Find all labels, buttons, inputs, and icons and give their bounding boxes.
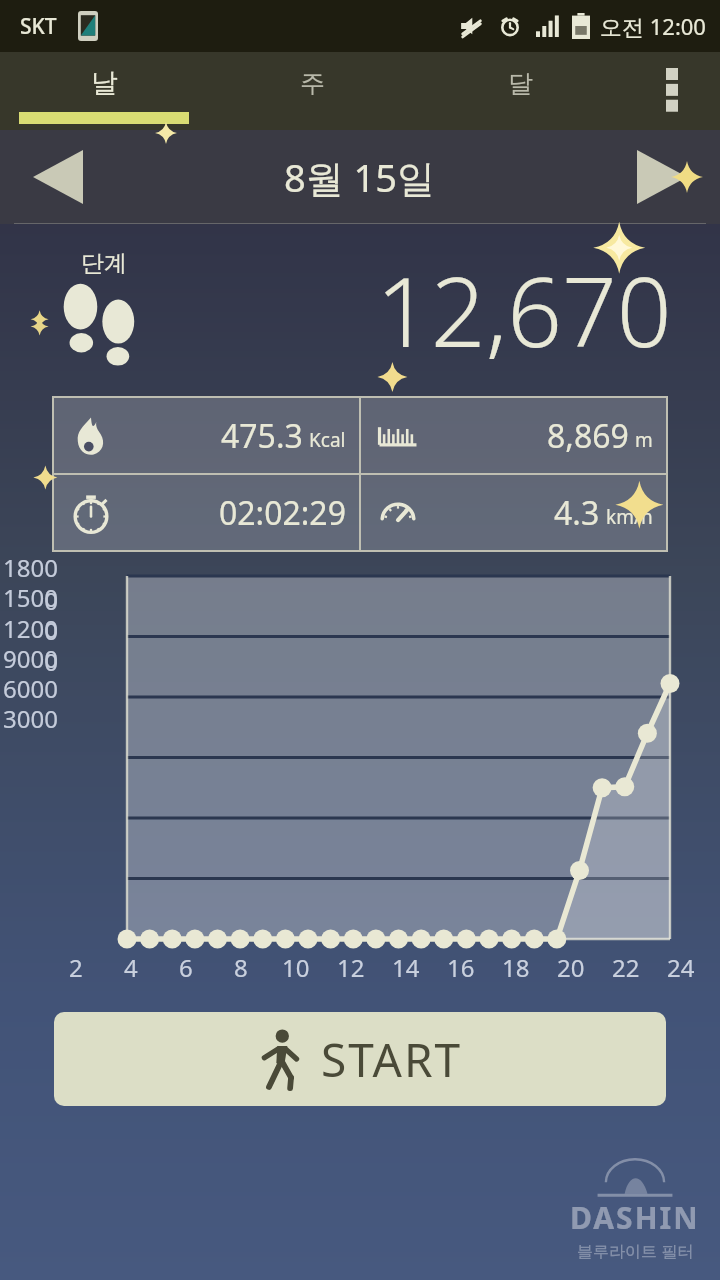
staticText: 18000 (0, 551, 58, 617)
button[interactable]: 8,869 (360, 397, 667, 474)
staticText: SKT (20, 12, 57, 41)
staticText: 3000 (0, 702, 58, 735)
staticText: 주 (300, 68, 325, 99)
button[interactable]: 달 (416, 52, 624, 130)
staticText: DASHIN (570, 1197, 700, 1238)
staticText: 12000 (0, 612, 58, 678)
button[interactable]: 날 (0, 52, 208, 130)
staticText: 2 (69, 951, 83, 984)
button[interactable]: Previous day (22, 145, 94, 209)
staticText: 9000 (0, 642, 58, 675)
staticText: 단계 (81, 249, 127, 278)
staticText: 날 (91, 66, 118, 100)
staticText: 15000 (0, 581, 58, 647)
staticText: 20 (557, 951, 585, 984)
staticText: 6000 (0, 672, 58, 705)
button[interactable]: Next day (626, 145, 698, 209)
staticText: 18 (502, 951, 530, 984)
staticText: 14 (392, 951, 420, 984)
staticText: 4.3 (554, 491, 600, 535)
staticText: 12 (337, 951, 365, 984)
staticText: 오전 12:00 (600, 11, 706, 41)
staticText: 16 (447, 951, 475, 984)
staticText: 4 (124, 951, 138, 984)
staticText: 6 (179, 951, 193, 984)
button[interactable]: More options (624, 52, 720, 130)
staticText: 24 (667, 951, 695, 984)
button[interactable]: 4.3 (360, 474, 667, 551)
staticText: 달 (508, 68, 533, 99)
staticText: 8,869 (547, 414, 629, 458)
staticText: m (635, 427, 653, 453)
button[interactable]: 02:02:29 (53, 474, 360, 551)
staticText: 475.3 (221, 414, 303, 458)
button[interactable]: 주 (208, 52, 416, 130)
staticText: 22 (612, 951, 640, 984)
staticText: Kcal (309, 427, 346, 453)
staticText: 10 (282, 951, 310, 984)
button[interactable]: 475.3 (53, 397, 360, 474)
staticText: START (321, 1028, 463, 1091)
staticText: km/h (606, 504, 653, 530)
staticText: 02:02:29 (219, 491, 346, 535)
staticText: 블루라이트 필터 (577, 1240, 694, 1262)
staticText: 8 (234, 951, 248, 984)
staticText: 8월 15일 (284, 151, 436, 203)
button[interactable]: START (54, 1012, 666, 1106)
staticText: 12,670 (376, 244, 672, 375)
